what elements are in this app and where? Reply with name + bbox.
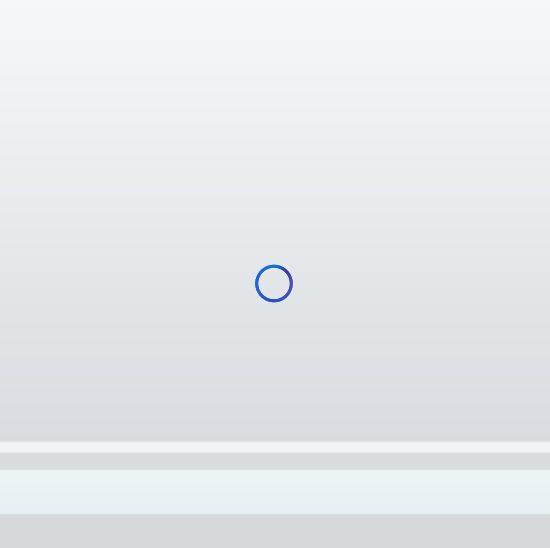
- button[interactable]: Loading: [254, 263, 294, 303]
